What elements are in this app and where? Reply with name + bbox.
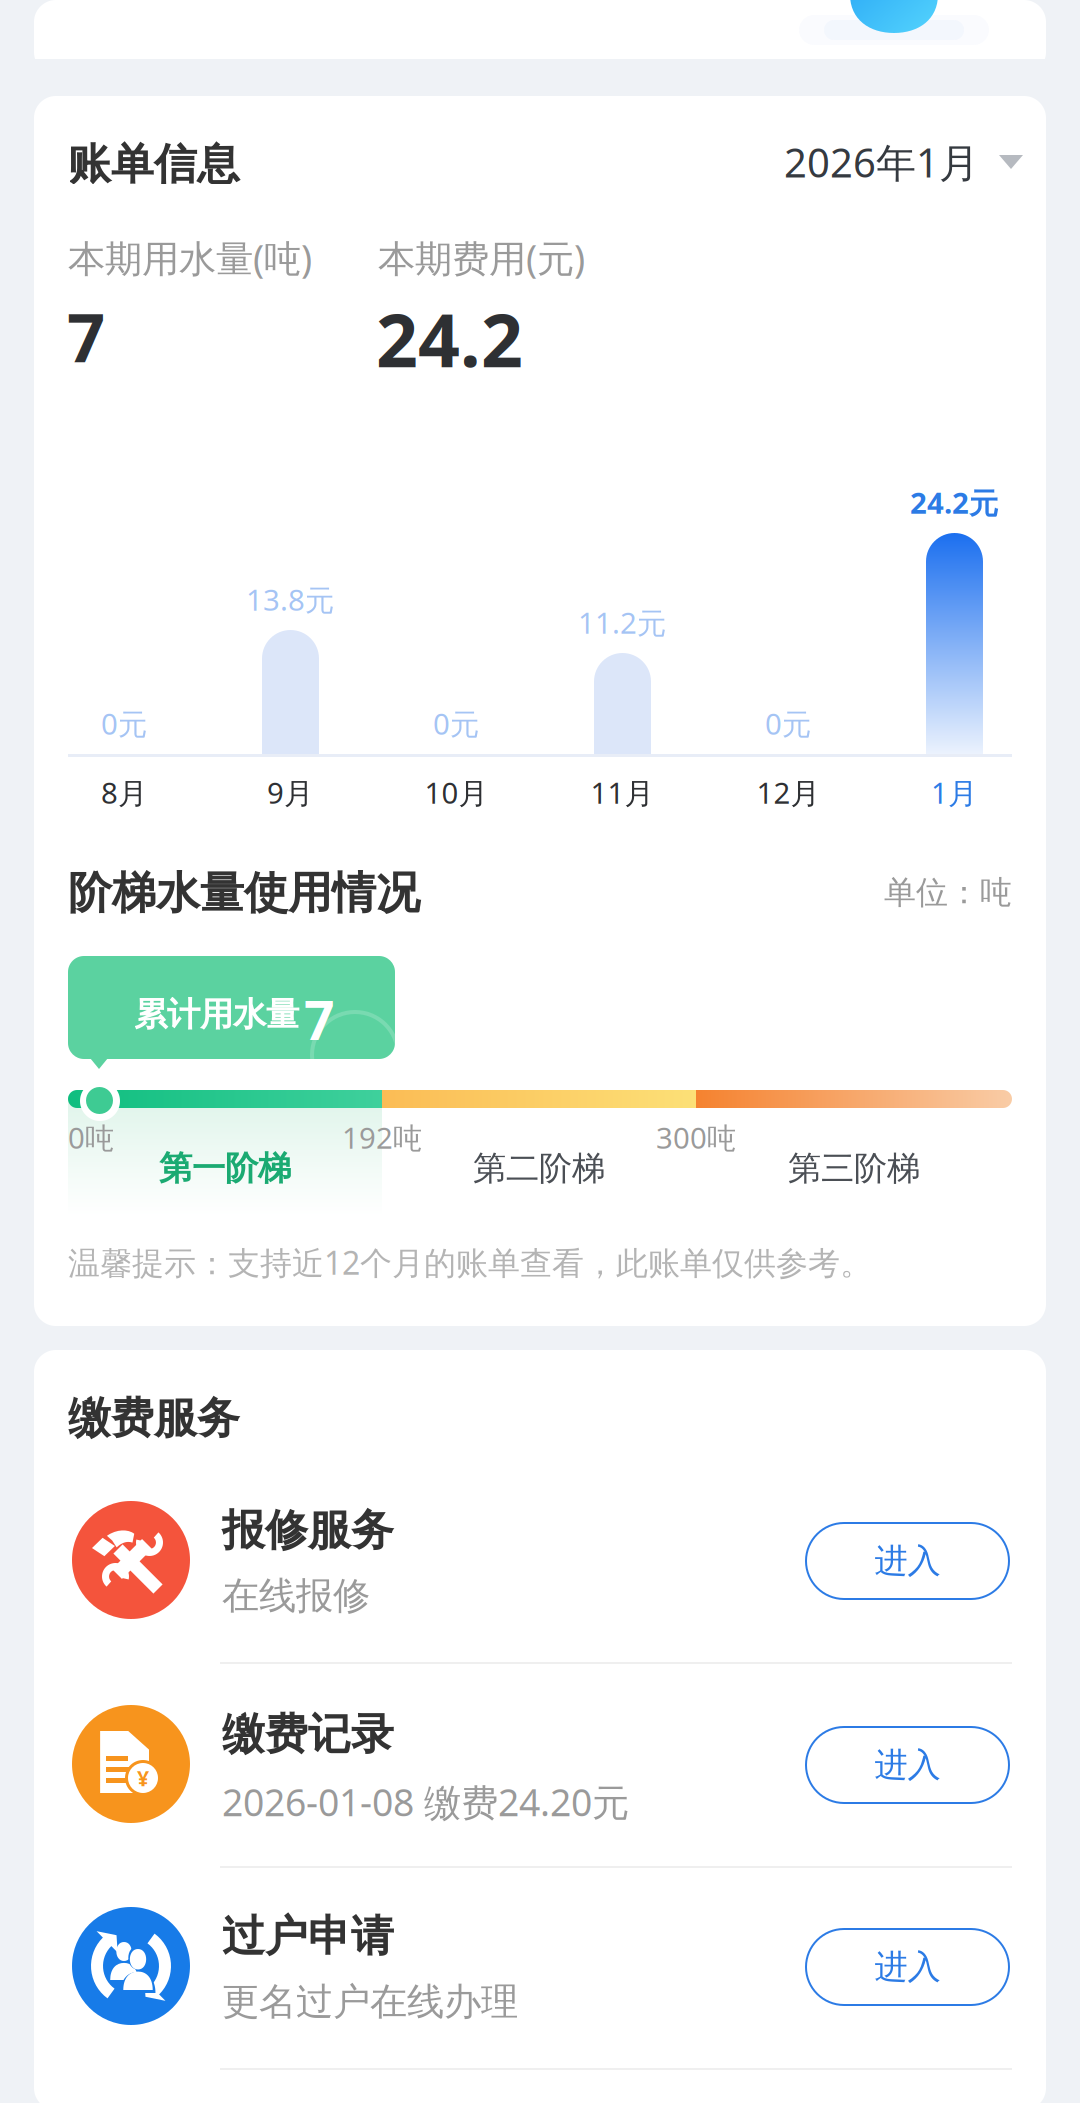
- staticText: 8月: [101, 773, 147, 812]
- staticText: ¥: [137, 1764, 149, 1792]
- staticText: 更名过户在线办理: [222, 1979, 518, 2025]
- staticText: 温馨提示：支持近12个月的账单查看，此账单仅供参考。: [68, 1241, 872, 1283]
- staticText: 12月: [756, 773, 819, 812]
- staticText: 缴费记录: [222, 1708, 394, 1760]
- staticText: 第二阶梯: [473, 1148, 605, 1189]
- staticText: 2026-01-08 缴费24.20元: [222, 1777, 629, 1827]
- staticText: 7: [304, 984, 335, 1055]
- staticText: 本期用水量(吨): [68, 233, 312, 283]
- staticText: 进入: [874, 1946, 940, 1987]
- staticText: 7: [67, 292, 105, 380]
- staticText: 24.2: [376, 290, 523, 387]
- button[interactable]: 2026年1月: [783, 134, 1023, 190]
- staticText: 进入: [874, 1540, 940, 1581]
- staticText: 13.8元: [246, 580, 334, 619]
- staticText: 1月: [931, 773, 977, 812]
- staticText: 报修服务: [222, 1504, 394, 1556]
- staticText: 300吨: [656, 1118, 736, 1157]
- staticText: 在线报修: [222, 1573, 370, 1619]
- staticText: 过户申请: [222, 1910, 394, 1962]
- staticText: 0吨: [68, 1118, 114, 1157]
- staticText: 账单信息: [68, 138, 240, 190]
- staticText: 192吨: [342, 1118, 422, 1157]
- staticText: 缴费服务: [68, 1392, 240, 1444]
- button[interactable]: ¥: [34, 1663, 1046, 1866]
- staticText: 0元: [101, 704, 147, 743]
- staticText: 进入: [874, 1744, 940, 1785]
- button[interactable]: 过户申请: [34, 1865, 1046, 2068]
- staticText: 第三阶梯: [788, 1148, 920, 1189]
- staticText: 本期费用(元): [378, 233, 585, 283]
- staticText: 阶梯水量使用情况: [68, 866, 420, 920]
- staticText: 0元: [433, 704, 479, 743]
- staticText: 累计用水量: [134, 994, 299, 1035]
- staticText: 10月: [424, 773, 487, 812]
- staticText: 24.2元: [910, 483, 998, 522]
- staticText: 9月: [267, 773, 313, 812]
- button[interactable]: 报修服务: [34, 1459, 1046, 1662]
- staticText: 2026年1月: [784, 135, 979, 188]
- staticText: 第一阶梯: [159, 1148, 291, 1189]
- staticText: 单位：吨: [884, 873, 1012, 912]
- staticText: 11.2元: [578, 603, 666, 642]
- staticText: 0元: [765, 704, 811, 743]
- staticText: 11月: [590, 773, 653, 812]
